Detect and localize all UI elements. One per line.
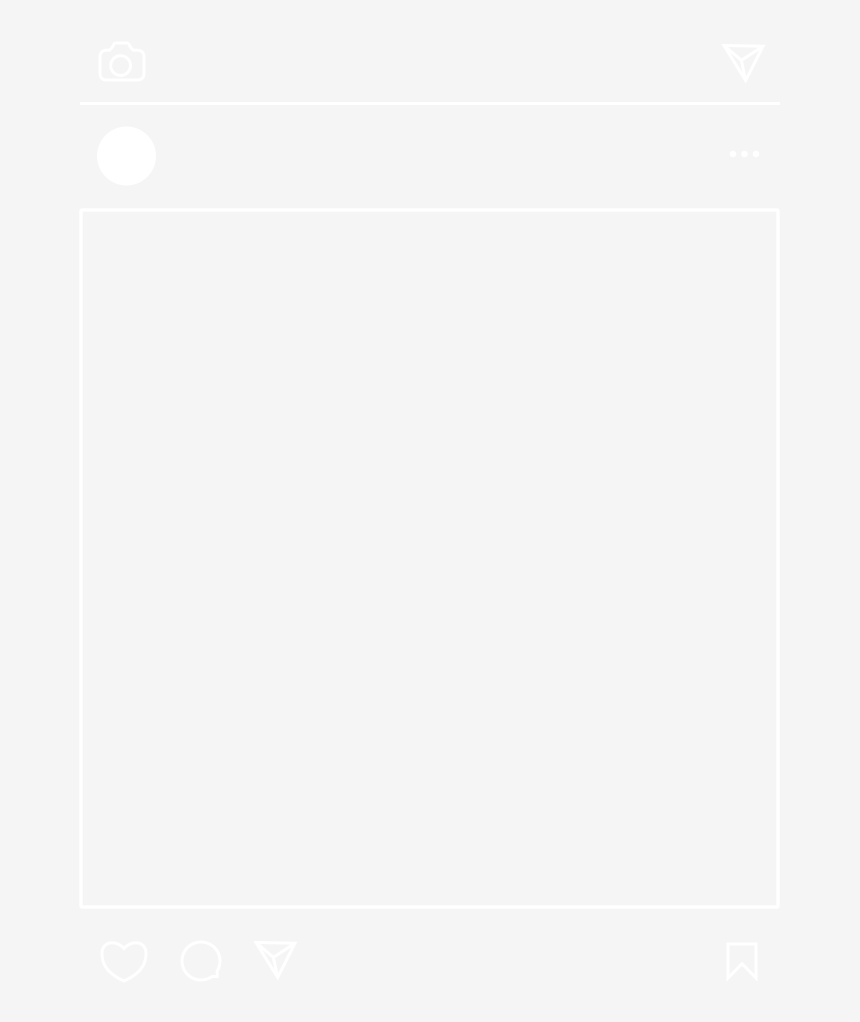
button[interactable]: Profile photo	[92, 119, 161, 198]
button[interactable]: Share	[245, 930, 306, 991]
button[interactable]: Camera	[91, 31, 153, 93]
button[interactable]: Direct messages	[713, 31, 774, 92]
